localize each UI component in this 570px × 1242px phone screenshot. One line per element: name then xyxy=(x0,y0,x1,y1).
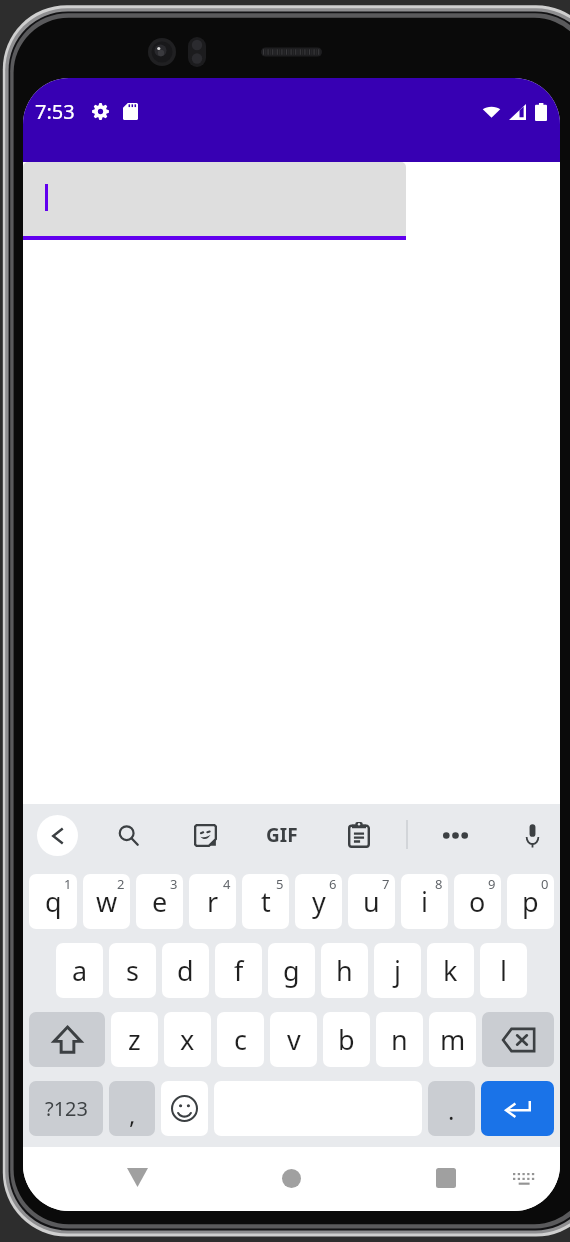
button[interactable]: g xyxy=(268,943,315,998)
button[interactable]: i xyxy=(401,874,448,929)
button[interactable]: Back xyxy=(114,1154,160,1200)
staticText: v xyxy=(287,1021,301,1058)
staticText: i xyxy=(421,883,428,920)
staticText: l xyxy=(500,952,507,989)
button[interactable]: Back xyxy=(37,815,78,856)
staticText: 3 xyxy=(170,875,178,893)
staticText: 2 xyxy=(117,875,125,893)
staticText: e xyxy=(152,883,168,920)
staticText: t xyxy=(261,883,271,920)
staticText: x xyxy=(180,1021,195,1058)
button[interactable]: Shift xyxy=(29,1012,105,1067)
button[interactable]: x xyxy=(164,1012,211,1067)
staticText: p xyxy=(522,883,539,920)
staticText: , xyxy=(129,1098,136,1131)
button[interactable]: j xyxy=(374,943,421,998)
button[interactable]: u xyxy=(348,874,395,929)
button[interactable]: Clipboard xyxy=(339,815,379,855)
button[interactable]: v xyxy=(270,1012,317,1067)
staticText: q xyxy=(45,883,62,920)
button[interactable]: k xyxy=(427,943,474,998)
button[interactable]: Voice input xyxy=(512,815,552,855)
button[interactable]: Enter xyxy=(481,1081,554,1136)
button[interactable]: GIF xyxy=(260,813,304,857)
staticText: GIF xyxy=(266,822,298,848)
button[interactable]: b xyxy=(323,1012,370,1067)
button[interactable]: w xyxy=(83,874,130,929)
button[interactable]: ?123 xyxy=(29,1081,103,1136)
staticText: 7:53 xyxy=(35,98,75,125)
staticText: r xyxy=(207,883,219,920)
staticText: g xyxy=(283,952,300,989)
staticText: s xyxy=(126,952,139,989)
staticText: c xyxy=(234,1021,247,1058)
button[interactable]: Switch keyboard xyxy=(502,1157,545,1200)
staticText: j xyxy=(394,952,401,989)
button[interactable]: f xyxy=(215,943,262,998)
button[interactable]: Emoji xyxy=(161,1081,208,1136)
staticText: 0 xyxy=(541,875,549,893)
staticText: f xyxy=(234,952,244,989)
staticText: k xyxy=(443,952,458,989)
staticText: 9 xyxy=(488,875,496,893)
button[interactable]: Search xyxy=(108,815,148,855)
button[interactable]: . xyxy=(428,1081,475,1136)
button[interactable]: More options xyxy=(435,815,475,855)
button[interactable]: m xyxy=(429,1012,476,1067)
staticText: u xyxy=(363,883,380,920)
button[interactable]: Recents xyxy=(423,1155,469,1201)
staticText: 5 xyxy=(276,875,284,893)
button[interactable]: c xyxy=(217,1012,264,1067)
staticText: n xyxy=(391,1021,408,1058)
staticText: . xyxy=(448,1094,455,1127)
button[interactable]: h xyxy=(321,943,368,998)
button[interactable]: s xyxy=(109,943,156,998)
button[interactable]: Backspace xyxy=(482,1012,554,1067)
button[interactable]: a xyxy=(56,943,103,998)
staticText: d xyxy=(177,952,194,989)
staticText: m xyxy=(440,1021,466,1058)
button[interactable]: q xyxy=(29,874,77,929)
staticText: ?123 xyxy=(45,1095,88,1122)
staticText: w xyxy=(96,883,118,920)
button[interactable]: , xyxy=(109,1081,155,1136)
button[interactable]: r xyxy=(189,874,236,929)
staticText: 8 xyxy=(435,875,443,893)
button[interactable]: p xyxy=(507,874,554,929)
button[interactable]: e xyxy=(136,874,183,929)
staticText: o xyxy=(469,883,486,920)
button[interactable]: l xyxy=(480,943,527,998)
button[interactable]: t xyxy=(242,874,289,929)
staticText: 6 xyxy=(329,875,337,893)
staticText: 1 xyxy=(64,875,72,893)
button[interactable] xyxy=(23,162,406,240)
button[interactable]: o xyxy=(454,874,501,929)
button[interactable]: y xyxy=(295,874,342,929)
staticText: b xyxy=(338,1021,355,1058)
button[interactable]: z xyxy=(111,1012,158,1067)
staticText: y xyxy=(312,883,326,920)
staticText: h xyxy=(336,952,353,989)
button[interactable]: Stickers xyxy=(185,815,225,855)
button[interactable]: Home xyxy=(268,1155,314,1201)
button[interactable]: n xyxy=(376,1012,423,1067)
button[interactable]: d xyxy=(162,943,209,998)
staticText: z xyxy=(128,1021,141,1058)
staticText: 4 xyxy=(223,875,231,893)
staticText: 7 xyxy=(382,875,390,893)
staticText: a xyxy=(72,952,88,989)
